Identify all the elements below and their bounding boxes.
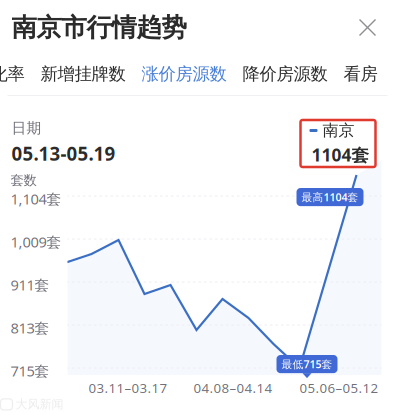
staticText: 05.06–05.12 <box>299 379 378 397</box>
button[interactable]: Close <box>348 8 386 46</box>
staticText: 05.13-05.19 <box>11 141 115 166</box>
staticText: 日期 <box>11 119 41 137</box>
staticText: 03.11–03.17 <box>88 379 167 397</box>
staticText: 南京 <box>322 121 354 140</box>
button[interactable]: 看房 <box>343 63 377 85</box>
staticText: 套数 <box>10 172 36 188</box>
staticText: 南京市行情趋势 <box>11 12 186 43</box>
button[interactable]: 新增挂牌数 <box>40 63 125 85</box>
button[interactable]: 涨价房源数 <box>141 63 226 85</box>
staticText: 新增挂牌数 <box>40 63 125 85</box>
staticText: 911套 <box>10 275 49 294</box>
staticText: 大风新闻 <box>15 397 63 412</box>
staticText: 715套 <box>10 361 49 380</box>
staticText: 1,104套 <box>10 189 61 208</box>
button[interactable]: 化率 <box>0 63 24 85</box>
staticText: 1,009套 <box>10 232 61 251</box>
staticText: 813套 <box>10 318 49 337</box>
staticText: 看房 <box>343 63 377 85</box>
staticText: 最高1104套 <box>301 190 358 204</box>
staticText: 1104套 <box>311 143 368 166</box>
staticText: 04.08–04.14 <box>193 379 272 397</box>
button[interactable]: 降价房源数 <box>242 63 327 85</box>
staticText: 最低715套 <box>281 357 332 371</box>
staticText: 涨价房源数 <box>141 63 226 85</box>
staticText: 化率 <box>0 63 24 85</box>
staticText: 降价房源数 <box>242 63 327 85</box>
